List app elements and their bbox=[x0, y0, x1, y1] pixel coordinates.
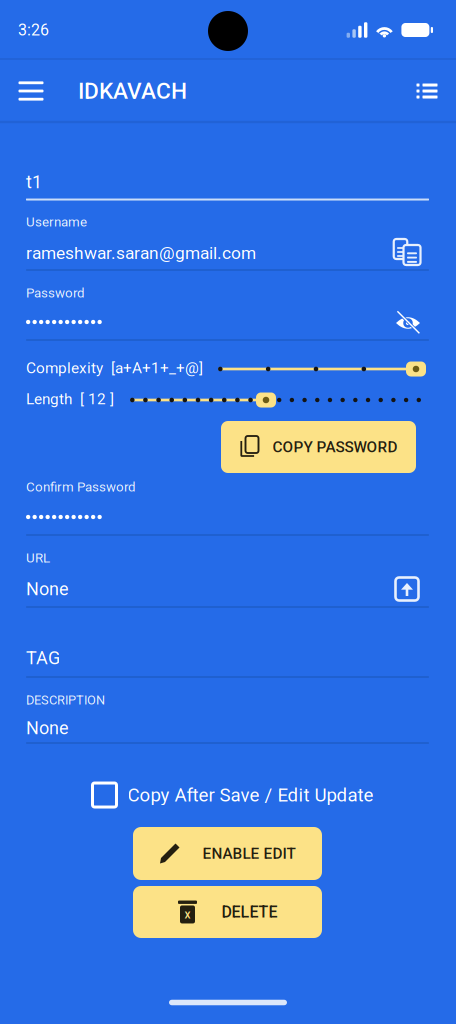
button[interactable]: Copy username bbox=[387, 232, 427, 272]
staticText: rameshwar.saran@gmail.com bbox=[26, 243, 256, 263]
button[interactable]: ENABLE EDIT bbox=[133, 827, 322, 880]
staticText: ENABLE EDIT bbox=[202, 844, 295, 862]
button[interactable]: x bbox=[133, 886, 322, 938]
staticText: Confirm Password bbox=[26, 479, 136, 495]
staticText: 3:26 bbox=[18, 21, 49, 39]
staticText: DELETE bbox=[221, 903, 277, 921]
staticText: Username bbox=[26, 214, 87, 230]
button[interactable]: Menu bbox=[2, 62, 60, 120]
staticText: Password bbox=[26, 285, 85, 301]
staticText: URL bbox=[26, 550, 50, 566]
staticText: None bbox=[26, 578, 69, 600]
staticText: x bbox=[184, 907, 190, 921]
button[interactable]: Open URL bbox=[387, 569, 427, 609]
button[interactable]: Copy After Save / Edit Update bbox=[92, 775, 373, 815]
staticText: None bbox=[26, 717, 69, 739]
staticText: DESCRIPTION bbox=[26, 692, 105, 707]
button[interactable]: Show password bbox=[388, 303, 428, 343]
staticText: COPY PASSWORD bbox=[272, 438, 397, 456]
staticText: Complexity [a+A+1+_+@] bbox=[26, 359, 203, 377]
button[interactable]: List bbox=[401, 65, 453, 117]
staticText: TAG bbox=[26, 647, 60, 669]
button[interactable]: COPY PASSWORD bbox=[221, 421, 416, 473]
staticText: IDKAVACH bbox=[78, 78, 187, 104]
staticText: t1 bbox=[26, 171, 42, 193]
staticText: Copy After Save / Edit Update bbox=[127, 784, 373, 806]
staticText: Length [ 12 ] bbox=[26, 390, 114, 408]
